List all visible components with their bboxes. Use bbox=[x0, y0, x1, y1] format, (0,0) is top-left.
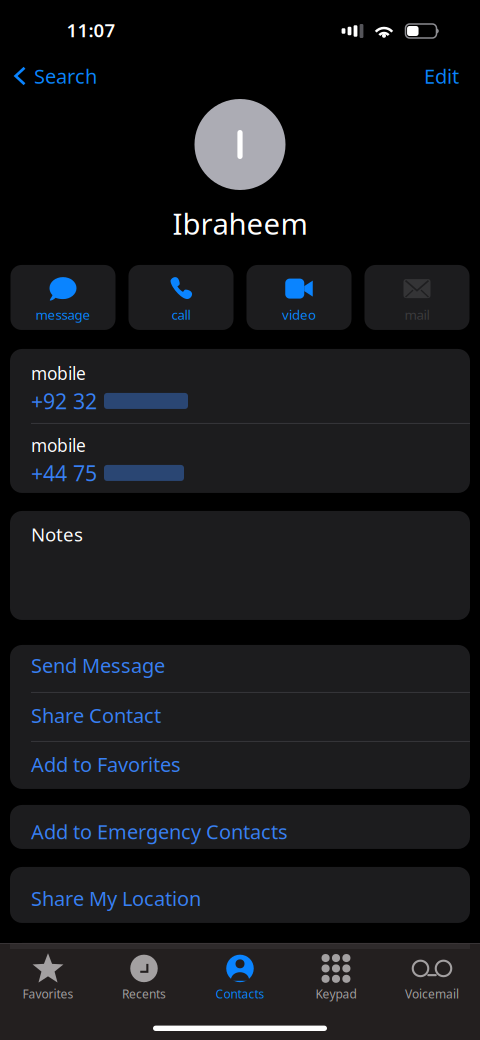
button[interactable]: Voicemail bbox=[384, 944, 480, 1002]
staticText: Share Contact bbox=[31, 702, 161, 729]
staticText: Favorites bbox=[22, 986, 73, 1002]
staticText: +92 32 bbox=[31, 387, 97, 415]
button[interactable]: Favorites bbox=[0, 944, 96, 1002]
staticText: Voicemail bbox=[405, 986, 459, 1002]
staticText: Send Message bbox=[31, 652, 165, 679]
button[interactable]: call bbox=[128, 265, 233, 330]
button[interactable]: mail bbox=[364, 265, 469, 330]
button[interactable]: mobile bbox=[10, 349, 470, 423]
staticText: Edit bbox=[424, 63, 459, 89]
staticText: Add to Emergency Contacts bbox=[31, 818, 288, 845]
staticText: Share My Location bbox=[31, 885, 201, 912]
staticText: Recents bbox=[122, 986, 166, 1002]
button[interactable]: Add to Emergency Contacts bbox=[10, 805, 470, 849]
button[interactable]: Contacts bbox=[192, 944, 288, 1002]
staticText: Keypad bbox=[315, 986, 356, 1002]
staticText: call bbox=[171, 306, 190, 323]
staticText: 11:07 bbox=[66, 18, 115, 42]
staticText: Contacts bbox=[215, 986, 264, 1002]
staticText: mobile bbox=[31, 434, 86, 457]
staticText: Notes bbox=[31, 522, 83, 547]
button[interactable]: Add to Favorites bbox=[10, 742, 470, 789]
button[interactable]: video bbox=[246, 265, 351, 330]
button[interactable]: Search bbox=[0, 54, 97, 98]
button[interactable]: Share Contact bbox=[10, 693, 470, 741]
button[interactable]: mobile bbox=[10, 424, 470, 493]
staticText: +44 75 bbox=[31, 459, 97, 487]
button[interactable]: Keypad bbox=[288, 944, 384, 1002]
staticText: message bbox=[35, 306, 90, 323]
staticText: mail bbox=[404, 306, 429, 323]
staticText: Add to Favorites bbox=[31, 751, 181, 778]
button[interactable]: Send Message bbox=[10, 645, 470, 692]
staticText: mobile bbox=[31, 362, 86, 385]
button[interactable]: Share My Location bbox=[10, 867, 470, 923]
staticText: Search bbox=[34, 63, 97, 89]
button[interactable]: Edit bbox=[424, 54, 480, 98]
staticText: Ibraheem bbox=[172, 204, 307, 243]
staticText: video bbox=[282, 306, 316, 323]
button[interactable]: Recents bbox=[96, 944, 192, 1002]
button[interactable]: message bbox=[10, 265, 115, 330]
